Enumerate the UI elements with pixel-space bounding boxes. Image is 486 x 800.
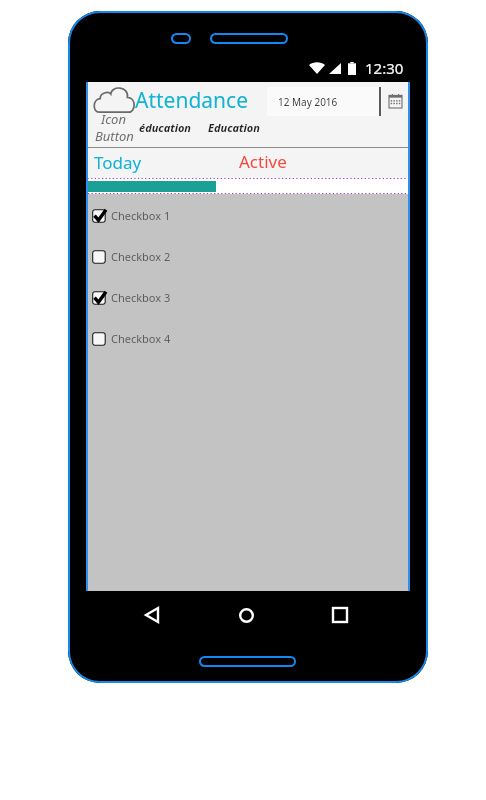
button[interactable]: Back	[139, 602, 165, 628]
staticText: Today	[94, 151, 142, 174]
button[interactable]: Recent apps	[327, 602, 353, 628]
button[interactable]: Pick date	[384, 90, 406, 112]
staticText: 12 May 2016	[278, 95, 338, 109]
staticText: Button	[95, 127, 134, 145]
staticText: Checkbox 1	[111, 208, 171, 223]
staticText: Checkbox 2	[111, 249, 171, 264]
button[interactable]: Checkbox 1	[87, 195, 409, 236]
staticText: Icon	[101, 110, 126, 128]
staticText: Active	[239, 150, 287, 173]
button[interactable]: Checkbox 3	[87, 277, 409, 318]
staticText: Checkbox 4	[111, 331, 171, 346]
button[interactable]: Icon Button	[91, 84, 139, 142]
button[interactable]: 12 May 2016	[267, 87, 382, 116]
staticText: éducation	[139, 120, 192, 135]
staticText: 12:30	[365, 58, 404, 78]
button[interactable]: Today	[87, 148, 216, 176]
button[interactable]: Checkbox 4	[87, 318, 409, 359]
staticText: Attendance	[135, 86, 249, 115]
staticText: Checkbox 3	[111, 290, 171, 305]
staticText: Education	[208, 120, 260, 135]
button[interactable]: Active	[216, 148, 409, 174]
button[interactable]: Home	[233, 602, 259, 628]
button[interactable]: Checkbox 2	[87, 236, 409, 277]
